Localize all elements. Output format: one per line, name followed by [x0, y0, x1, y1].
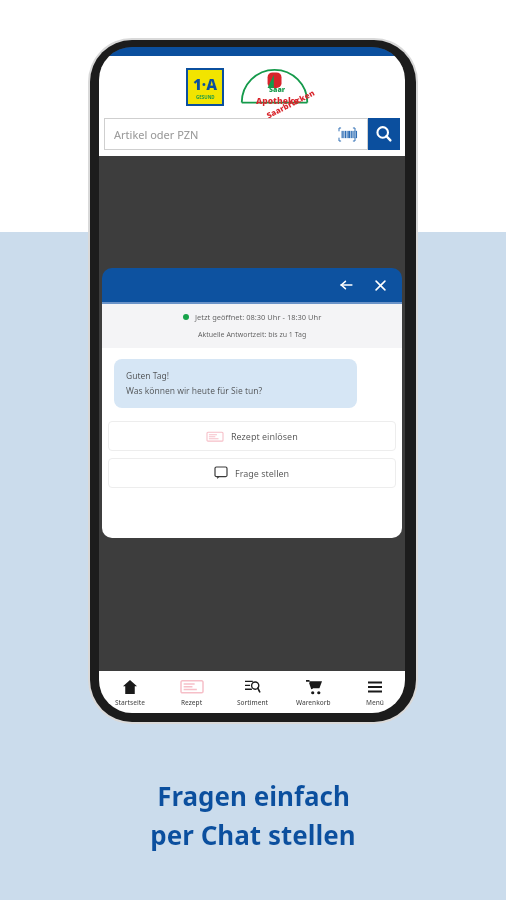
- staticText: GESUND: [196, 94, 215, 100]
- button[interactable]: Sortiment: [222, 671, 283, 713]
- staticText: Rezept: [181, 698, 203, 707]
- staticText: Warenkorb: [296, 698, 331, 707]
- staticText: Aktuelle Antwortzeit: bis zu 1 Tag: [198, 330, 307, 340]
- staticText: Jetzt geöffnet: 08:30 Uhr - 18:30 Uhr: [195, 312, 322, 322]
- button[interactable]: Suchen: [368, 118, 400, 150]
- button[interactable]: Zurück: [334, 273, 358, 297]
- button[interactable]: Rezept: [161, 671, 222, 713]
- staticText: Was können wir heute für Sie tun?: [126, 385, 263, 397]
- button[interactable]: Frage stellen: [108, 458, 396, 488]
- staticText: Startseite: [115, 698, 145, 707]
- staticText: Fragen einfach: [157, 778, 350, 813]
- staticText: Frage stellen: [235, 467, 290, 479]
- staticText: Apotheke: [256, 95, 299, 107]
- button[interactable]: Barcode scannen: [336, 123, 358, 145]
- staticText: Sortiment: [237, 698, 268, 707]
- button[interactable]: Schließen: [368, 273, 392, 297]
- staticText: Artikel oder PZN: [114, 127, 199, 142]
- staticText: Guten Tag!: [126, 370, 170, 382]
- button[interactable]: Warenkorb: [283, 671, 344, 713]
- staticText: Menü: [366, 698, 384, 707]
- staticText: per Chat stellen: [150, 817, 356, 852]
- staticText: Saar: [269, 85, 286, 95]
- button[interactable]: Rezept einlösen: [108, 421, 396, 451]
- staticText: Saarbrücken: [264, 87, 317, 120]
- button[interactable]: Menü: [344, 671, 405, 713]
- staticText: Rezept einlösen: [231, 430, 298, 442]
- button[interactable]: Startseite: [99, 671, 161, 713]
- button[interactable]: Artikel oder PZN: [104, 118, 368, 150]
- staticText: 1·A: [193, 74, 218, 94]
